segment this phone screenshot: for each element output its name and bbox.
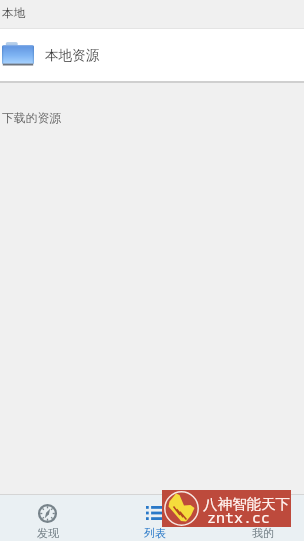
button[interactable]: 我的 (215, 495, 304, 541)
staticText: zntx.cc (207, 507, 271, 527)
staticText: 列表 (144, 526, 166, 540)
staticText: 八神智能天下 (203, 495, 290, 513)
other: 列表 (146, 506, 163, 520)
button[interactable]: 本地资源 (0, 29, 304, 81)
staticText: 下载的资源 (2, 111, 61, 126)
button[interactable]: 发现 (0, 495, 95, 541)
staticText: 我的 (252, 526, 274, 540)
button[interactable]: 列表 (107, 495, 202, 541)
staticText: 本地资源 (45, 47, 100, 64)
other: 发现 (38, 504, 57, 523)
other: 我的 (254, 504, 272, 522)
staticText: 本地 (2, 6, 25, 20)
staticText: 发现 (37, 526, 59, 540)
